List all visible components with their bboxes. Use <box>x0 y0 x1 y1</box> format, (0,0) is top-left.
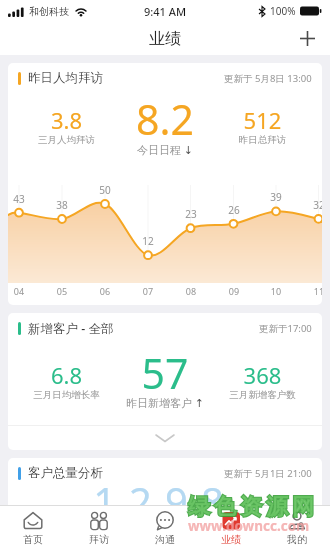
staticText: 39 <box>264 190 288 204</box>
staticText: 新增客户 - 全部 <box>28 320 114 337</box>
staticText: 26 <box>222 203 246 217</box>
staticText: 06 <box>93 285 117 297</box>
staticText: 更新于 5月1日 21:00 <box>224 467 312 480</box>
staticText: 8.2 <box>102 91 228 147</box>
staticText: 客户总量分析 <box>28 465 103 481</box>
staticText: 04 <box>8 285 31 297</box>
staticText: 三月人均拜访 <box>14 134 119 146</box>
staticText: 业绩 <box>221 533 241 546</box>
staticText: 10 <box>264 285 288 297</box>
button[interactable]: 新增客户 - 全部 <box>8 313 322 450</box>
button[interactable] <box>8 426 322 450</box>
staticText: 昨日人均拜访 <box>28 70 103 86</box>
staticText: 沟通 <box>155 533 175 546</box>
staticText: 32 <box>307 198 322 212</box>
staticText: 拜访 <box>89 533 109 546</box>
button[interactable] <box>289 22 325 55</box>
staticText: www.downcc.com <box>188 517 310 535</box>
staticText: 三月新增客户数 <box>210 389 315 401</box>
staticText: 今日日程 ↓ <box>102 142 228 157</box>
staticText: 三月日均增长率 <box>14 389 119 401</box>
staticText: 43 <box>8 192 31 206</box>
button[interactable]: 首页 <box>0 506 66 546</box>
staticText: 12 <box>136 234 160 248</box>
staticText: 业绩 <box>149 29 181 49</box>
staticText: 368 <box>210 360 315 390</box>
staticText: 3.8 <box>14 105 119 135</box>
staticText: 和创科技 <box>29 5 69 18</box>
staticText: 512 <box>210 105 315 135</box>
staticText: 绿色资源网 <box>186 493 316 521</box>
staticText: 昨日总拜访 <box>210 134 315 146</box>
staticText: 23 <box>179 207 203 221</box>
staticText: 09 <box>222 285 246 297</box>
button[interactable]: 拜访 <box>66 506 132 546</box>
staticText: 57 <box>102 345 228 401</box>
staticText: 6.8 <box>14 360 119 390</box>
staticText: 50 <box>93 183 117 197</box>
button[interactable]: 昨日人均拜访 <box>8 63 322 305</box>
staticText: 1298 <box>8 474 322 528</box>
staticText: 更新于17:00 <box>259 322 312 335</box>
staticText: 08 <box>179 285 203 297</box>
button[interactable]: 我的 <box>264 506 330 546</box>
staticText: 更新于 5月8日 13:00 <box>224 72 312 85</box>
staticText: 昨日新增客户 ↑ <box>102 395 228 410</box>
button[interactable]: 客户总量分析 <box>8 458 322 550</box>
staticText: 首页 <box>23 533 43 546</box>
staticText: 100% <box>270 4 296 18</box>
staticText: 11 <box>307 285 322 297</box>
button[interactable]: 沟通 <box>132 506 198 546</box>
staticText: 9:41 AM <box>144 4 187 19</box>
staticText: 绿色资源网 <box>186 493 316 521</box>
staticText: 07 <box>136 285 160 297</box>
staticText: 我的 <box>287 533 307 546</box>
button[interactable]: 业绩 <box>198 506 264 546</box>
staticText: 05 <box>50 285 74 297</box>
staticText: 38 <box>50 198 74 212</box>
